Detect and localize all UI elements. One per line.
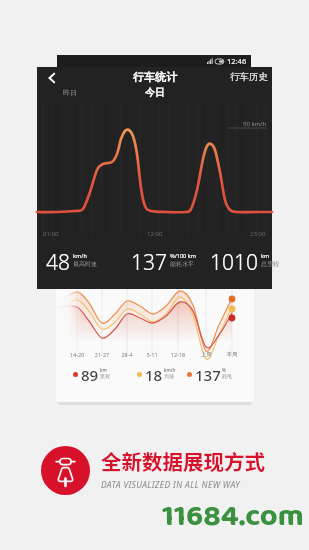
button[interactable]: 14-20 <box>56 289 254 402</box>
staticText: 行车统计 <box>133 70 177 84</box>
staticText: 50 km/h <box>243 120 267 128</box>
staticText: %/100 km <box>170 252 196 259</box>
staticText: 均速 <box>164 373 174 379</box>
staticText: 137 <box>195 365 221 385</box>
button[interactable]: 137 <box>131 248 196 277</box>
staticText: 12:00 <box>147 230 163 238</box>
staticText: km <box>100 367 107 373</box>
staticText: 全新数据展现方式 <box>101 446 265 476</box>
staticText: km <box>261 252 270 259</box>
staticText: 14-20 <box>63 351 91 358</box>
staticText: 137 <box>131 248 167 277</box>
staticText: 耗电 <box>222 373 232 379</box>
button[interactable]: 昨日 <box>63 88 77 97</box>
staticText: 28-4 <box>113 351 141 358</box>
staticText: % <box>222 367 226 373</box>
button[interactable]: 48 <box>46 248 97 277</box>
staticText: 最高时速 <box>73 260 97 268</box>
button[interactable]: Scooter <box>41 446 90 495</box>
staticText: 里程 <box>100 373 110 379</box>
staticText: 总里程 <box>261 260 279 268</box>
staticText: 89 <box>81 365 99 385</box>
button[interactable]: 今日 <box>145 86 165 99</box>
staticText: km/h <box>73 252 87 259</box>
staticText: 11684.com <box>162 492 304 542</box>
button[interactable]: 行车历史 <box>230 71 268 83</box>
staticText: 5-11 <box>138 351 166 358</box>
staticText: 21-27 <box>88 351 116 358</box>
staticText: 能耗水平 <box>170 260 194 268</box>
staticText: 01:00 <box>43 230 59 238</box>
staticText: 12:46 <box>227 56 247 66</box>
staticText: 23:00 <box>250 230 266 238</box>
staticText: 1010 <box>210 248 258 277</box>
staticText: 18 <box>145 365 163 385</box>
staticText: km/h <box>164 367 176 373</box>
staticText: 上周 <box>192 351 220 358</box>
staticText: 本周 <box>218 351 246 358</box>
button[interactable]: Back <box>43 69 61 87</box>
staticText: 12-18 <box>164 351 192 358</box>
button[interactable]: 1010 <box>210 248 279 277</box>
staticText: DATA VISUALIZED IN ALL NEW WAY <box>101 479 240 491</box>
staticText: 48 <box>46 248 70 277</box>
